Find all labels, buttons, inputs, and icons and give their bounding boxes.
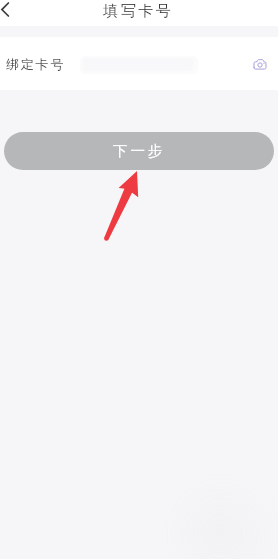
button[interactable]: Back: [0, 1, 24, 25]
button[interactable]: Scan card: [248, 52, 272, 76]
staticText: 下一步: [113, 142, 166, 160]
staticText: 绑定卡号: [6, 56, 66, 72]
button[interactable]: 下一步: [4, 132, 274, 170]
staticText: 填写卡号: [102, 2, 172, 21]
